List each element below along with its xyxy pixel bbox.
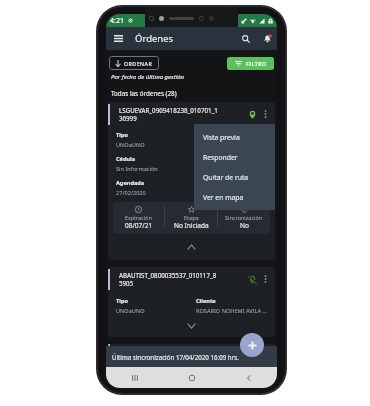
staticText: Sin Información <box>116 165 158 173</box>
button[interactable]: Vista previa <box>194 127 275 147</box>
staticText: Órdenes <box>135 32 174 45</box>
staticText: Todas las órdenes (28) <box>111 89 177 98</box>
staticText: Cédula <box>116 155 136 163</box>
staticText: Tipo <box>116 131 128 139</box>
staticText: 08/07/21 <box>125 221 153 230</box>
button[interactable]: Notifications <box>258 27 276 50</box>
button[interactable]: More options <box>259 270 272 288</box>
button[interactable]: FILTRO <box>227 57 274 70</box>
staticText: Tipo <box>116 297 128 305</box>
staticText: Vista previa <box>203 133 240 142</box>
staticText: No Iniciada <box>174 221 209 230</box>
button[interactable]: More options <box>259 105 272 123</box>
staticText: Cliente <box>196 297 216 305</box>
button[interactable]: Menu <box>108 27 128 50</box>
staticText: 4:21 <box>110 16 124 26</box>
button[interactable]: ORDENAR <box>109 56 159 70</box>
button[interactable]: Home <box>163 367 220 388</box>
button[interactable]: Collapse <box>108 234 275 260</box>
staticText: Etapa <box>184 214 199 221</box>
staticText: Última sincronización 17/04/2020 16:09 h… <box>112 353 239 361</box>
staticText: ROSARIO NOHEMI AVILA ... <box>196 307 268 315</box>
staticText: No <box>240 221 249 230</box>
staticText: LSGUEVAR_0909418238_010701_1 36999 <box>119 106 245 122</box>
button[interactable]: Add order <box>240 333 264 357</box>
staticText: FILTRO <box>246 60 267 67</box>
staticText: 27/02/2020 <box>116 189 146 197</box>
button[interactable]: Expand <box>108 315 275 337</box>
staticText: ORDENAR <box>124 60 153 67</box>
staticText: Sincronización <box>225 214 263 221</box>
staticText: UNOaUNO <box>116 141 145 149</box>
staticText: ABAUTIST_0800035537_010117_8 5905 <box>119 271 245 287</box>
button[interactable]: Recents <box>106 367 163 388</box>
staticText: Ver en mapa <box>203 193 244 202</box>
button[interactable]: Search <box>237 27 255 50</box>
button[interactable]: Back <box>220 367 277 388</box>
staticText: Quitar de ruta <box>203 173 249 182</box>
staticText: Por fecha de última gestión <box>111 73 185 81</box>
staticText: Expiración <box>125 214 152 221</box>
button[interactable]: Responder <box>194 147 275 167</box>
staticText: Responder <box>203 153 238 162</box>
staticText: UNOaUNO <box>116 307 145 315</box>
button[interactable]: Ver en mapa <box>194 187 275 207</box>
staticText: Agendada <box>116 179 145 187</box>
button[interactable]: Quitar de ruta <box>194 167 275 187</box>
